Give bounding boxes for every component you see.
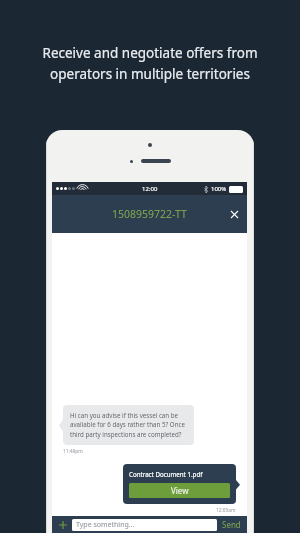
staticText: 1508959722-TT (112, 207, 187, 221)
staticText: operators in multiple territories (50, 65, 250, 83)
staticText: 12:00 (142, 185, 158, 193)
button[interactable]: Hi can you advise if this vessel can be … (63, 405, 194, 445)
button[interactable]: Close (226, 206, 242, 222)
staticText: 11:48pm (63, 448, 83, 455)
staticText: Type something... (76, 520, 135, 530)
staticText: Contract Document 1.pdf (129, 470, 203, 478)
staticText: Receive and negotiate offers from (42, 44, 258, 62)
staticText: Hi can you advise if this vessel can be … (70, 411, 187, 439)
staticText: Send (222, 519, 241, 530)
button[interactable]: Add attachment (57, 519, 69, 531)
button[interactable]: Contract Document 1.pdf (123, 464, 236, 504)
staticText: 100% (211, 185, 227, 193)
button[interactable]: Send (221, 519, 242, 530)
staticText: 12:05am (216, 507, 236, 514)
button[interactable]: Type something... (72, 519, 217, 531)
button[interactable]: View (129, 483, 230, 498)
staticText: View (171, 485, 189, 496)
